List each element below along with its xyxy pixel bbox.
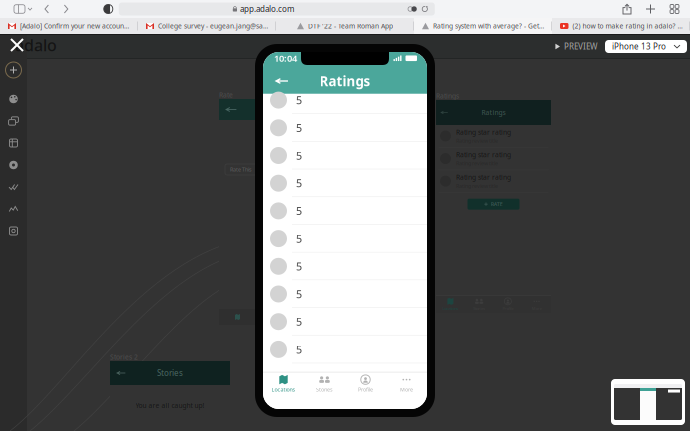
button[interactable]: 5 xyxy=(263,142,427,169)
staticText: app.adalo.com xyxy=(240,4,294,14)
staticText: Rating system with average? - Get Help /… xyxy=(433,22,544,30)
button[interactable]: iPhone 13 Pro xyxy=(605,40,687,53)
button[interactable]: Add xyxy=(0,58,27,82)
staticText: PREVIEW xyxy=(564,41,598,52)
staticText: 5 xyxy=(296,93,302,107)
staticText: Ratings xyxy=(436,92,459,100)
button[interactable]: 5 xyxy=(263,252,427,280)
button[interactable]: 5 xyxy=(263,197,427,225)
button[interactable]: (2) how to make rating in adalo? - YouTu… xyxy=(552,18,690,34)
staticText: Stories 2 xyxy=(110,353,138,361)
staticText: adalo xyxy=(15,34,57,56)
button[interactable]: More xyxy=(386,372,427,395)
button[interactable]: Sidebar xyxy=(14,5,25,13)
staticText: iPhone 13 Pro xyxy=(612,41,666,52)
button[interactable]: Close xyxy=(8,36,26,54)
button[interactable]: Design xyxy=(0,88,27,110)
button[interactable]: app.adalo.com xyxy=(119,2,435,15)
staticText: Rating star rating xyxy=(456,128,511,137)
button[interactable]: Publish xyxy=(0,220,27,242)
button[interactable]: Locations xyxy=(436,296,465,313)
staticText: Stories xyxy=(157,368,183,378)
button[interactable]: 5 xyxy=(263,335,427,363)
staticText: 10:04 xyxy=(274,52,297,64)
button[interactable]: Stories xyxy=(304,372,345,395)
button[interactable]: Screens xyxy=(0,110,27,132)
staticText: Stories xyxy=(316,386,333,393)
staticText: Profile xyxy=(358,386,373,393)
button[interactable]: Settings xyxy=(0,154,27,176)
staticText: Rating star rating xyxy=(456,173,511,182)
button[interactable]: [Adalo] Confirm your new account - 0120y… xyxy=(0,18,138,34)
button[interactable]: DTF '22 - Team Roman App xyxy=(276,18,414,34)
button[interactable]: 5 xyxy=(263,114,427,142)
staticText: You are all caught up! xyxy=(135,401,204,410)
staticText: 5 xyxy=(296,231,302,246)
button[interactable]: Show Tab Overview xyxy=(670,4,679,13)
staticText: [Adalo] Confirm your new account - 0120y… xyxy=(20,22,130,30)
staticText: 5 xyxy=(296,121,302,135)
button[interactable]: Reader View xyxy=(104,4,113,13)
button[interactable]: College survey - eugean.jang@saintjoseph… xyxy=(138,18,276,34)
button[interactable]: Profile xyxy=(345,372,386,395)
button[interactable]: Forward xyxy=(64,5,68,13)
button[interactable]: Share xyxy=(623,4,631,14)
staticText: (2) how to make rating in adalo? - YouTu… xyxy=(572,22,682,30)
button[interactable]: Back xyxy=(271,71,293,91)
staticText: Ratings xyxy=(481,108,505,117)
button[interactable]: Locations xyxy=(263,372,304,395)
staticText: 5 xyxy=(296,204,302,218)
button[interactable]: Analytics xyxy=(0,198,27,220)
staticText: Locations xyxy=(271,386,295,393)
staticText: Rate xyxy=(219,91,233,99)
button[interactable]: Database xyxy=(0,132,27,154)
button[interactable]: 5 xyxy=(263,308,427,336)
staticText: College survey - eugean.jang@saintjoseph… xyxy=(158,22,268,30)
staticText: 5 xyxy=(296,342,302,356)
staticText: 5 xyxy=(296,287,302,301)
staticText: 5 xyxy=(296,148,302,163)
button[interactable]: 5 xyxy=(263,225,427,252)
button[interactable]: Reload xyxy=(422,6,428,12)
staticText: 5 xyxy=(296,259,302,273)
button[interactable]: 5 xyxy=(263,169,427,197)
staticText: RATE xyxy=(491,201,503,208)
button[interactable]: 5 xyxy=(263,280,427,308)
staticText: Locations xyxy=(442,306,458,311)
button[interactable]: RATE xyxy=(467,199,519,210)
staticText: Rating star rating xyxy=(456,150,511,159)
button[interactable]: 5 xyxy=(263,86,427,114)
staticText: DTF '22 - Team Roman App xyxy=(308,22,393,30)
staticText: 5 xyxy=(296,315,302,329)
staticText: Rate This xyxy=(230,166,252,173)
staticText: 5 xyxy=(296,176,302,190)
staticText: More xyxy=(400,386,413,393)
staticText: Ratings xyxy=(319,72,370,90)
button[interactable]: Back xyxy=(45,5,48,13)
button[interactable]: Rating system with average? - Get Help /… xyxy=(414,18,552,34)
button[interactable]: PREVIEW xyxy=(555,39,598,53)
button[interactable]: New Tab xyxy=(646,4,655,13)
button[interactable]: Tasks xyxy=(0,176,27,198)
